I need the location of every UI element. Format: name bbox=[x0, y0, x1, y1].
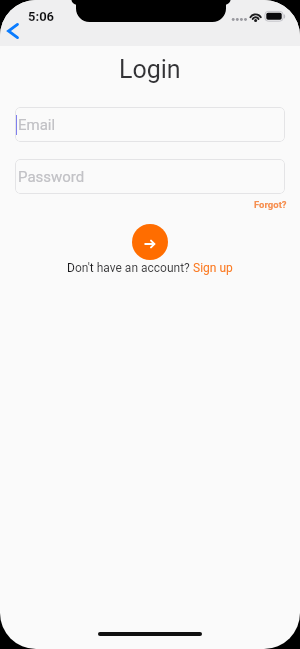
button[interactable]: Forgot? bbox=[197, 196, 287, 212]
button[interactable]: Submit bbox=[132, 224, 168, 260]
staticText: 5:06 bbox=[28, 9, 55, 24]
staticText: Email bbox=[18, 116, 56, 134]
staticText: Sign up bbox=[193, 261, 233, 275]
button[interactable]: Password bbox=[15, 159, 285, 194]
button[interactable]: Email bbox=[15, 107, 285, 142]
button[interactable]: Sign up bbox=[193, 261, 233, 275]
staticText: Login bbox=[119, 55, 181, 84]
button[interactable]: Back bbox=[0, 21, 25, 41]
staticText: Password bbox=[18, 168, 85, 186]
staticText: Don't have an account? bbox=[67, 261, 193, 275]
staticText: Forgot? bbox=[254, 199, 287, 210]
